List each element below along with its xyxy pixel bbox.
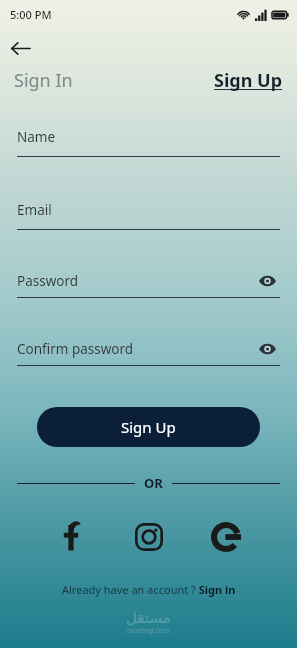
button[interactable]: Back	[6, 34, 34, 62]
button[interactable]: Sign up with Instagram	[130, 518, 168, 556]
button[interactable]: Sign up with Facebook	[52, 518, 90, 556]
staticText: Sign Up	[214, 68, 283, 93]
staticText: Already have an account ? Sign in	[62, 582, 236, 597]
button[interactable]: Sign up with Google	[207, 518, 245, 556]
staticText: mostaql.com	[127, 626, 170, 636]
button[interactable]: Password	[17, 268, 280, 298]
staticText: Email	[17, 201, 280, 219]
button[interactable]: Name	[17, 128, 280, 157]
button[interactable]: Show password	[254, 336, 280, 362]
button[interactable]: Sign Up	[37, 407, 260, 447]
staticText: Password	[17, 272, 254, 290]
button[interactable]: Email	[17, 201, 280, 230]
staticText: OR	[144, 474, 163, 492]
staticText: Sign Up	[121, 417, 176, 437]
staticText: 5:00 PM	[10, 7, 52, 22]
staticText: Sign In	[14, 68, 73, 93]
button[interactable]: Sign Up	[212, 66, 285, 95]
button[interactable]: Sign In	[12, 66, 75, 95]
staticText: Confirm password	[17, 340, 254, 358]
button[interactable]: Show password	[254, 268, 280, 294]
staticText: Name	[17, 128, 280, 146]
button[interactable]: Confirm password	[17, 336, 280, 366]
button[interactable]: Already have an account ? Sign in	[56, 579, 242, 600]
staticText: مستقل	[126, 609, 171, 626]
